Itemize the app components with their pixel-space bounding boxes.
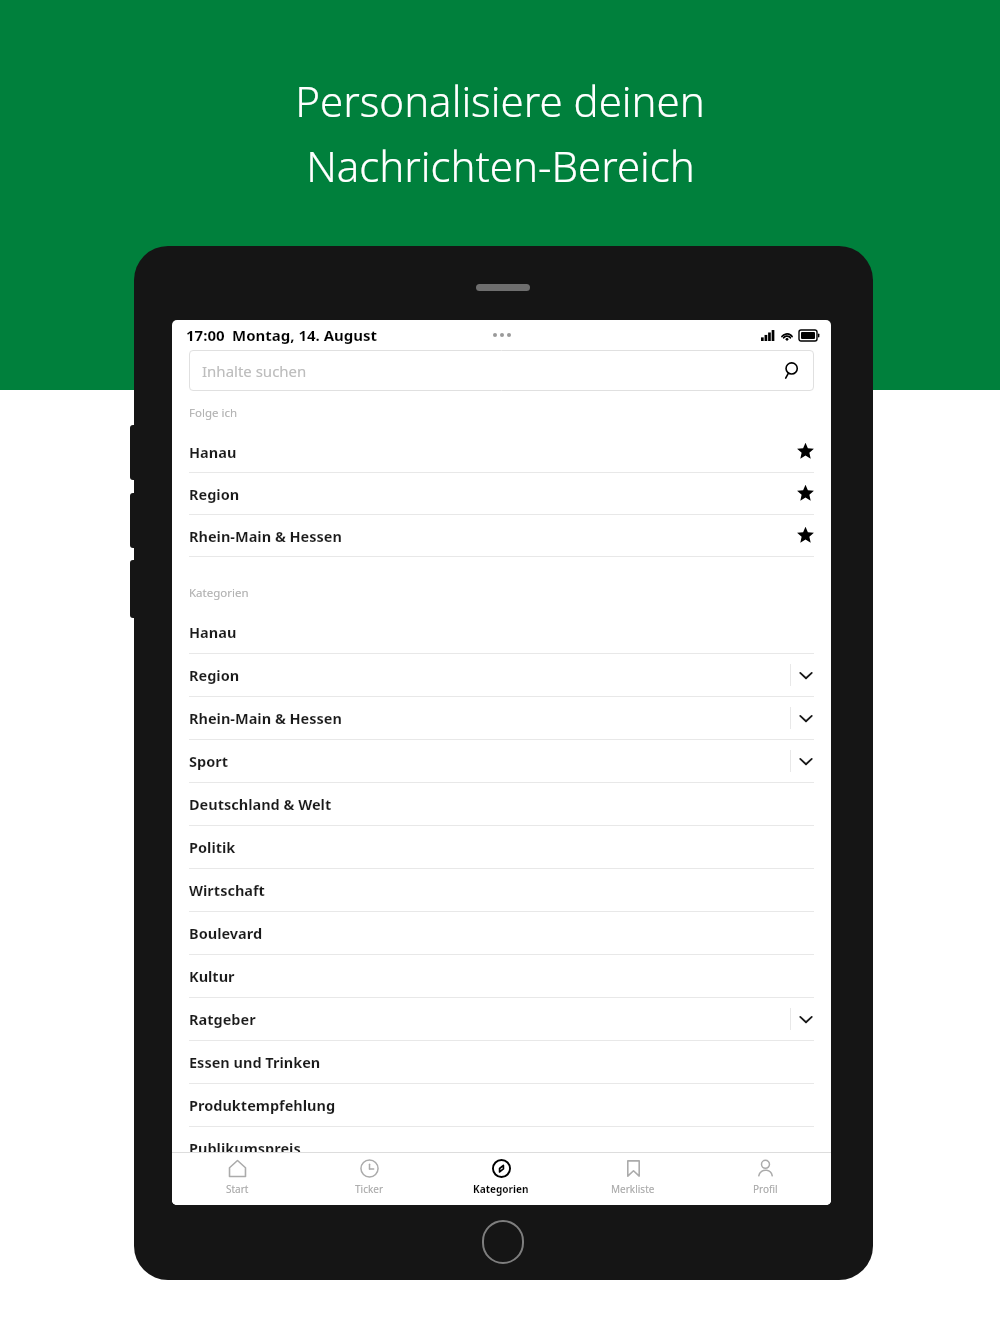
staticText: Wirtschaft	[189, 880, 265, 900]
staticText: Boulevard	[189, 923, 263, 943]
staticText: Region	[189, 484, 240, 504]
staticText: Region	[189, 665, 240, 685]
button[interactable]: Rhein-Main & Hessen	[172, 697, 831, 740]
staticText: Montag, 14. August	[232, 325, 378, 345]
staticText: Produktempfehlung	[189, 1095, 336, 1115]
other: Favorit	[797, 527, 814, 544]
staticText: Nachrichten-Bereich	[306, 137, 695, 194]
other: Favorit	[797, 443, 814, 460]
staticText: Folge ich	[189, 405, 238, 421]
button[interactable]: Ticker	[303, 1153, 435, 1205]
button[interactable]: Ratgeber	[172, 998, 831, 1041]
staticText: Personalisiere deinen	[295, 72, 705, 129]
button[interactable]: Rhein-Main & Hessen	[172, 515, 831, 557]
staticText: Profil	[753, 1182, 778, 1196]
staticText: Sport	[189, 751, 228, 771]
staticText: Kultur	[189, 966, 235, 986]
staticText: Essen und Trinken	[189, 1052, 321, 1072]
button[interactable]: Sport	[172, 740, 831, 783]
button[interactable]: Essen und Trinken	[172, 1041, 831, 1084]
button[interactable]: Kultur	[172, 955, 831, 998]
button[interactable]: Politik	[172, 826, 831, 869]
button[interactable]: Kategorien	[435, 1153, 567, 1205]
button[interactable]: Profil	[699, 1153, 831, 1205]
staticText: Start	[226, 1182, 249, 1196]
button[interactable]: Boulevard	[172, 912, 831, 955]
button[interactable]: Region	[172, 654, 831, 697]
staticText: Kategorien	[189, 585, 249, 601]
staticText: Ticker	[355, 1182, 384, 1196]
button[interactable]: Deutschland & Welt	[172, 783, 831, 826]
button[interactable]: Region	[172, 473, 831, 515]
button[interactable]: Start	[172, 1153, 303, 1205]
other: Aufklappen	[797, 752, 815, 770]
staticText: Ratgeber	[189, 1009, 256, 1029]
other: Suchen	[784, 362, 801, 379]
other: Favorit	[797, 485, 814, 502]
button[interactable]: Wirtschaft	[172, 869, 831, 912]
button[interactable]: Merkliste	[567, 1153, 699, 1205]
staticText: Merkliste	[611, 1182, 655, 1196]
staticText: Publikumspreis	[189, 1138, 301, 1158]
staticText: 17:00	[186, 325, 225, 345]
staticText: Inhalte suchen	[202, 361, 307, 381]
staticText: Hanau	[189, 622, 237, 642]
button[interactable]: Hanau	[172, 431, 831, 473]
button[interactable]: Inhalte suchen	[189, 350, 814, 391]
other: Aufklappen	[797, 666, 815, 684]
staticText: Hanau	[189, 442, 237, 462]
button[interactable]: Publikumspreis	[172, 1127, 831, 1170]
other: Aufklappen	[797, 709, 815, 727]
staticText: Rhein-Main & Hessen	[189, 708, 342, 728]
staticText: Politik	[189, 837, 236, 857]
button[interactable]: Produktempfehlung	[172, 1084, 831, 1127]
other: Aufklappen	[797, 1010, 815, 1028]
staticText: Kategorien	[473, 1182, 529, 1196]
button[interactable]: Hanau	[172, 611, 831, 654]
staticText: Deutschland & Welt	[189, 794, 332, 814]
staticText: Rhein-Main & Hessen	[189, 526, 342, 546]
